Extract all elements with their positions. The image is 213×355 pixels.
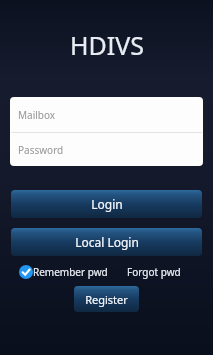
- staticText: Mailbox: [18, 108, 56, 122]
- staticText: Password: [18, 143, 64, 157]
- other: Remember password checkbox: [19, 265, 33, 279]
- button[interactable]: Mailbox: [10, 97, 203, 132]
- staticText: Forgot pwd: [127, 265, 181, 279]
- staticText: HDIVS: [70, 28, 144, 62]
- button[interactable]: Register: [74, 286, 139, 312]
- button[interactable]: Remember password checkbox: [19, 265, 108, 279]
- staticText: Local Login: [75, 234, 139, 250]
- staticText: Login: [91, 196, 123, 212]
- staticText: Remember pwd: [33, 265, 108, 279]
- button[interactable]: Login: [11, 190, 202, 218]
- button[interactable]: Password: [10, 133, 203, 166]
- button[interactable]: Local Login: [11, 228, 202, 256]
- staticText: Register: [85, 292, 128, 307]
- button[interactable]: Forgot pwd: [127, 265, 181, 279]
